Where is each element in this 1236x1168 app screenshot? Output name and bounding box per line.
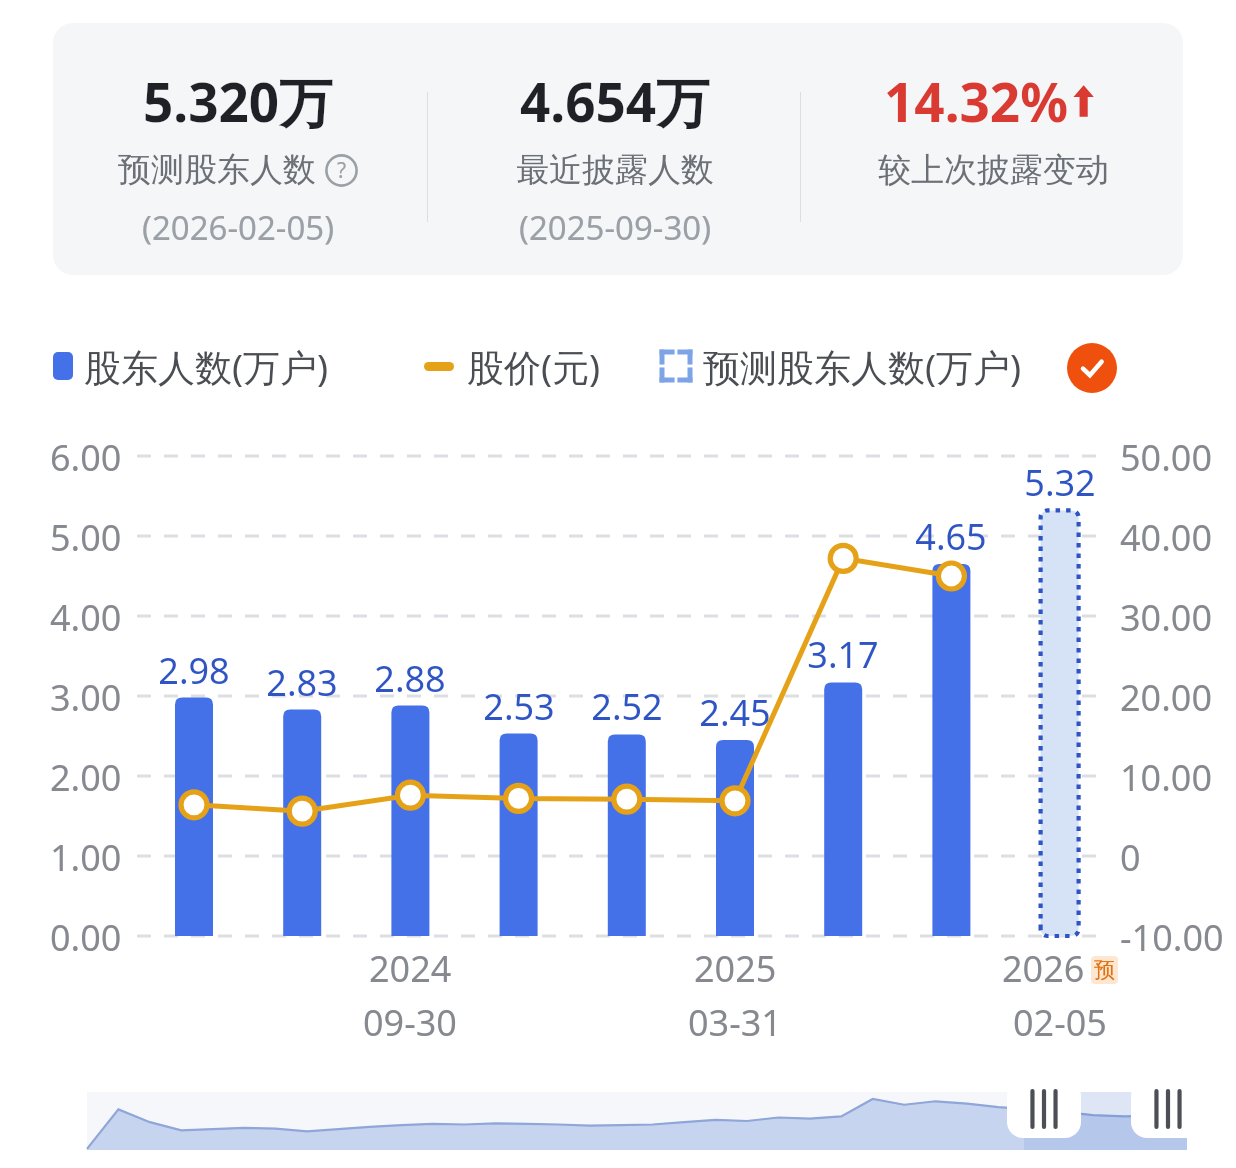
- staticText: 2024: [369, 944, 452, 993]
- staticText: (2026-02-05): [142, 205, 335, 250]
- staticText: 02-05: [1013, 998, 1107, 1047]
- button[interactable]: 14.32%: [823, 65, 1163, 191]
- staticText: 预测股东人数(万户): [703, 341, 1022, 392]
- staticText: 5.320万: [143, 65, 333, 137]
- staticText: 5.00: [50, 513, 122, 562]
- staticText: 2.45: [699, 688, 771, 737]
- staticText: 较上次披露变动: [878, 149, 1109, 191]
- staticText: 0.00: [50, 913, 122, 962]
- staticText: 2.53: [483, 682, 555, 731]
- staticText: 40.00: [1120, 513, 1213, 562]
- staticText: 4.654万: [520, 65, 710, 137]
- staticText: 50.00: [1120, 433, 1213, 482]
- staticText: 6.00: [50, 433, 122, 482]
- staticText: 预测股东人数: [118, 149, 316, 191]
- staticText: 03-31: [688, 998, 782, 1047]
- staticText: 5.32: [1024, 458, 1096, 507]
- staticText: 1.00: [50, 833, 122, 882]
- staticText: 30.00: [1120, 593, 1213, 642]
- staticText: 4.00: [50, 593, 122, 642]
- staticText: 3.17: [807, 630, 879, 679]
- staticText: 股东人数(万户): [84, 341, 329, 392]
- button[interactable]: 左侧范围手柄: [1007, 1080, 1081, 1138]
- button[interactable]: 5.320万: [68, 65, 408, 250]
- staticText: 20.00: [1120, 673, 1213, 722]
- staticText: 2.98: [158, 646, 230, 695]
- staticText: 2.00: [50, 753, 122, 802]
- button[interactable]: 4.654万: [445, 65, 785, 250]
- staticText: 14.32%: [884, 65, 1068, 137]
- staticText: 3.00: [50, 673, 122, 722]
- staticText: 4.65: [915, 512, 987, 561]
- button[interactable]: 股价(元): [424, 335, 601, 397]
- button[interactable]: 预测股东人数(万户): [662, 335, 1022, 397]
- staticText: 2.83: [266, 658, 338, 707]
- staticText: 预: [1094, 957, 1115, 983]
- staticText: 2.52: [591, 682, 663, 731]
- staticText: 10.00: [1120, 753, 1213, 802]
- button[interactable]: 左侧范围手柄: [87, 1092, 1187, 1150]
- staticText: (2025-09-30): [519, 205, 712, 250]
- staticText: ?: [337, 156, 347, 185]
- button[interactable]: 股东人数(万户): [53, 335, 329, 397]
- staticText: 0: [1120, 833, 1141, 882]
- button[interactable]: 帮助说明: [325, 154, 358, 187]
- staticText: 2.88: [374, 654, 446, 703]
- staticText: 2025: [694, 944, 777, 993]
- button[interactable]: 已选择: [1067, 343, 1117, 393]
- staticText: 09-30: [363, 998, 457, 1047]
- button[interactable]: 右侧范围手柄: [1131, 1080, 1205, 1138]
- staticText: 最近披露人数: [516, 149, 714, 191]
- staticText: -10.00: [1120, 913, 1224, 962]
- staticText: 股价(元): [467, 341, 601, 392]
- staticText: 2026: [1002, 944, 1085, 993]
